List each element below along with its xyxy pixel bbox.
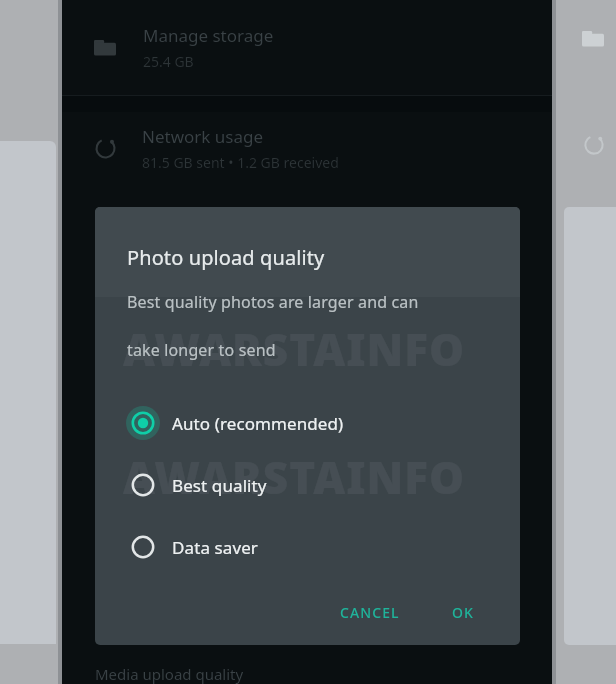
staticText: Media upload quality (95, 664, 244, 684)
button[interactable]: Best quality (113, 459, 503, 511)
button[interactable]: Manage storage (62, 0, 552, 95)
button[interactable]: Data saver (113, 521, 503, 573)
staticText: 25.4 GB (143, 52, 194, 71)
staticText: Data saver (172, 536, 258, 559)
button[interactable]: Network usage (62, 103, 552, 193)
button[interactable]: Auto (recommended) (113, 397, 503, 449)
staticText: AWARSTAINFO (123, 447, 465, 507)
staticText: Network usage (142, 125, 264, 148)
button[interactable]: CANCEL (323, 593, 417, 632)
staticText: AWARSTAINFO (123, 319, 465, 379)
staticText: Auto (recommended) (172, 412, 344, 435)
staticText: take longer to send (127, 339, 276, 361)
staticText: OK (452, 603, 475, 622)
staticText: 81.5 GB sent • 1.2 GB received (142, 153, 339, 172)
button[interactable]: OK (435, 593, 492, 632)
staticText: Photo upload quality (127, 244, 325, 271)
staticText: Best quality (172, 474, 267, 497)
staticText: Manage storage (143, 24, 274, 47)
staticText: Best quality photos are larger and can (127, 291, 419, 313)
staticText: CANCEL (340, 603, 400, 622)
